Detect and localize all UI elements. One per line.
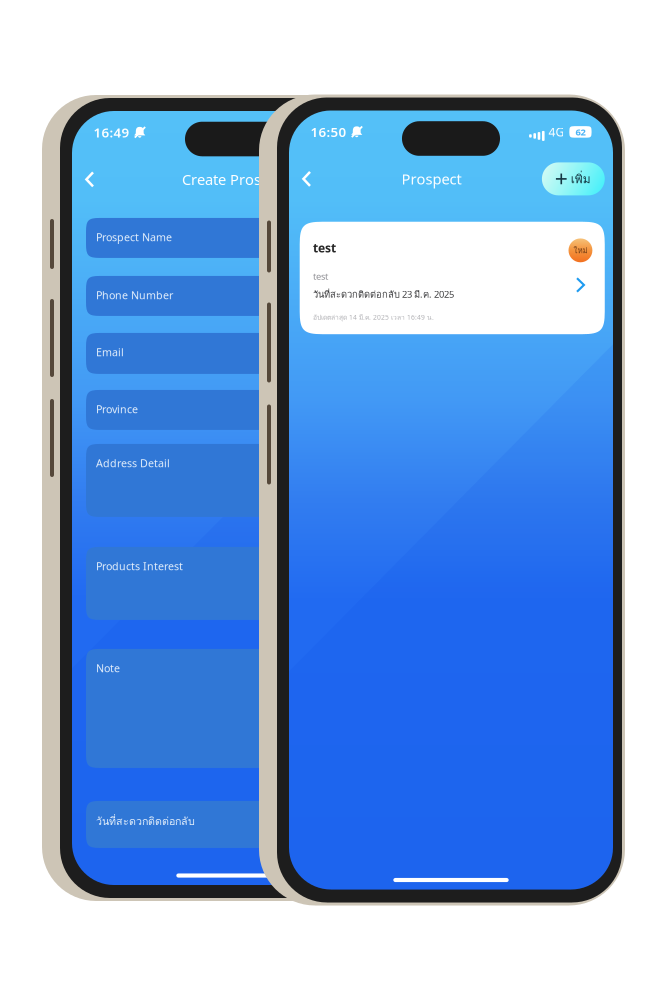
staticText: 16:49 — [93, 124, 129, 141]
staticText: 16:50 — [310, 123, 346, 141]
staticText: test — [313, 240, 336, 256]
staticText: Prospect — [401, 169, 461, 189]
button[interactable]: เพิ่ม — [542, 162, 605, 195]
staticText: อัปเดตล่าสุด 14 มี.ค. 2025 เวลา 16:49 น. — [313, 312, 434, 323]
staticText: Products Interest — [96, 559, 183, 573]
staticText: วันที่สะดวกติดต่อกลับ 23 มี.ค. 2025 — [313, 287, 454, 302]
staticText: Note — [96, 661, 120, 675]
staticText: Address Detail — [96, 456, 170, 470]
staticText: เพิ่ม — [571, 170, 591, 188]
staticText: 62 — [575, 126, 585, 138]
staticText: ใหม่ — [573, 244, 587, 257]
button[interactable]: Back — [292, 164, 321, 194]
staticText: 4G — [548, 124, 564, 140]
staticText: Email — [96, 345, 124, 359]
staticText: test — [313, 270, 328, 282]
staticText: Province — [96, 402, 138, 416]
staticText: Phone Number — [96, 288, 173, 302]
button[interactable]: test — [300, 222, 605, 334]
staticText: Create Prospect — [182, 170, 290, 189]
staticText: Prospect Name — [96, 230, 172, 244]
staticText: วันที่สะดวกติดต่อกลับ — [96, 813, 195, 829]
